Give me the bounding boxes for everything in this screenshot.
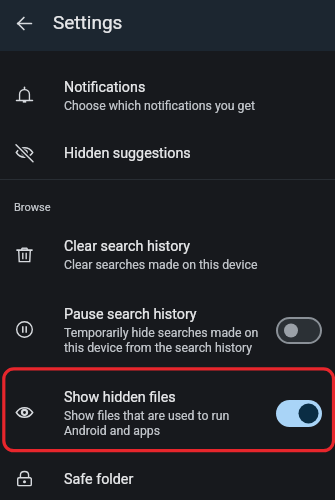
button[interactable]: Toggle on [276,400,322,427]
staticText: Show hidden files [64,389,176,406]
staticText: Notifications [64,79,146,96]
staticText: Clear searches made on this device [64,257,258,272]
button[interactable]: Clear search history [0,238,335,272]
button[interactable]: Toggle off [276,317,322,344]
staticText: Clear search history [64,238,191,255]
button[interactable]: Safe folder [0,471,335,488]
button[interactable]: Hidden suggestions [0,145,335,162]
staticText: Temporarily hide searches made on this d… [64,325,259,355]
staticText: Choose which notifications you get [64,98,255,113]
button[interactable]: Pause search history [0,306,335,355]
staticText: Safe folder [64,471,134,488]
button[interactable]: Back [8,9,41,42]
staticText: Pause search history [64,306,197,323]
staticText: Settings [53,11,123,33]
staticText: Show files that are used to run Android … [64,408,230,438]
staticText: Hidden suggestions [64,145,191,162]
button[interactable]: Show hidden files [0,389,335,438]
button[interactable]: Notifications [0,79,335,113]
staticText: Browse [14,201,51,214]
